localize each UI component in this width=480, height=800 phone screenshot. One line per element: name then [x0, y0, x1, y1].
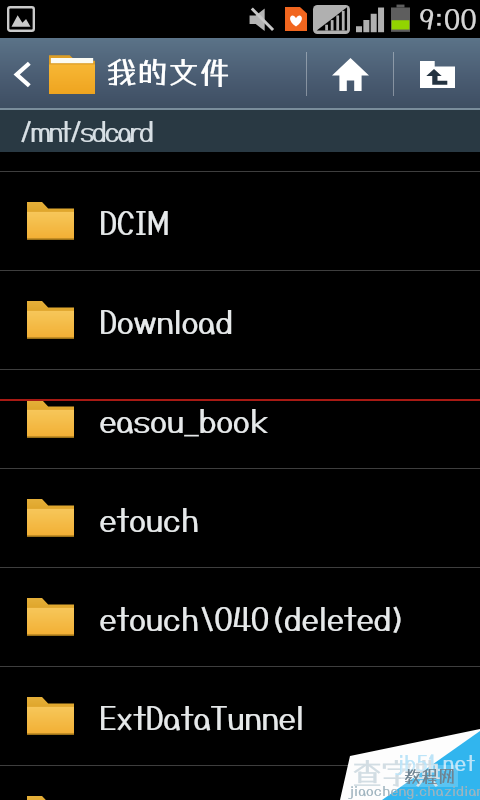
staticText: 查字典: [352, 756, 442, 791]
button[interactable]: Back: [0, 38, 44, 110]
staticText: /mnt/sdcard: [19, 115, 152, 147]
staticText: DCIM: [99, 204, 169, 242]
button[interactable]: DCIM: [0, 172, 480, 270]
button[interactable]: 我的文件: [44, 38, 306, 110]
button[interactable]: etouch\040(deleted): [0, 568, 480, 666]
button[interactable]: ExtDataTunnel: [0, 667, 480, 765]
staticText: Download: [99, 303, 233, 341]
staticText: etouch\040(deleted): [99, 600, 406, 638]
button[interactable]: Up one level: [394, 38, 480, 110]
staticText: 9:00: [419, 3, 477, 36]
button[interactable]: Download: [0, 271, 480, 369]
staticText: 教程网: [404, 766, 455, 786]
staticText: etouch: [99, 501, 200, 539]
button[interactable]: Fonts: [0, 766, 480, 800]
staticText: jiaocheng.chazidian.com: [350, 782, 480, 799]
button[interactable]: Home: [307, 38, 393, 110]
button[interactable]: easou_book: [0, 370, 480, 468]
staticText: easou_book: [99, 402, 268, 440]
staticText: 我的文件: [106, 54, 230, 91]
button[interactable]: etouch: [0, 469, 480, 567]
staticText: jb51.net: [398, 750, 476, 775]
staticText: ExtDataTunnel: [99, 699, 304, 737]
